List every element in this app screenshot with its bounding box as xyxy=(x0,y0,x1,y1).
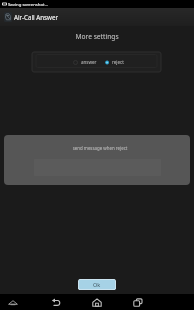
button[interactable]: Ok xyxy=(78,279,116,290)
button[interactable]: answer xyxy=(73,57,97,67)
button[interactable]: Recents xyxy=(128,294,148,310)
button[interactable]: Back xyxy=(46,294,66,310)
staticText: answer xyxy=(81,59,97,65)
button[interactable]: Home xyxy=(87,294,107,310)
staticText: Air-Call Answer xyxy=(14,13,58,21)
staticText: send message when reject xyxy=(7,145,190,151)
staticText: Saving screenshot... xyxy=(8,1,49,7)
staticText: More settings xyxy=(0,32,194,41)
button[interactable]: reject xyxy=(104,57,124,67)
staticText: reject xyxy=(112,59,124,65)
button[interactable]: Launcher xyxy=(3,294,23,310)
staticText: Ok xyxy=(93,281,101,288)
